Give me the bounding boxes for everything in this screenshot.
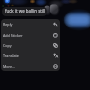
staticText: More... — [3, 64, 16, 69]
staticText: fuck it we ballin still — [5, 8, 46, 14]
button[interactable]: Reply — [1, 19, 60, 30]
button[interactable]: More... — [1, 61, 60, 71]
button[interactable]: fuck it we ballin still — [2, 7, 47, 16]
staticText: Copy — [3, 43, 12, 48]
button[interactable]: Copy — [1, 40, 60, 50]
staticText: Add Sticker — [3, 33, 23, 38]
staticText: Reply — [3, 22, 13, 27]
button[interactable]: Add Sticker — [1, 30, 60, 40]
button[interactable]: Translate — [1, 50, 60, 61]
staticText: Translate — [3, 53, 19, 58]
